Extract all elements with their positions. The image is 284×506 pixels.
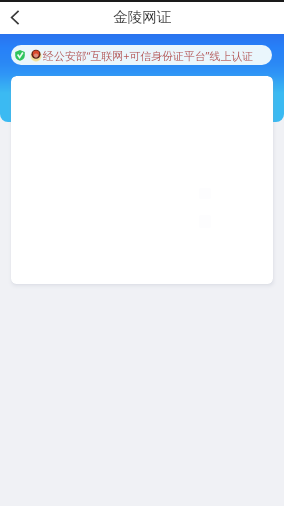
button[interactable]: 经公安部“互联网+可信身份证平台”线上认证: [11, 45, 272, 65]
staticText: 金陵网证: [113, 8, 172, 26]
staticText: 经公安部“互联网+可信身份证平台”线上认证: [43, 48, 254, 63]
button[interactable]: Back: [0, 2, 30, 32]
